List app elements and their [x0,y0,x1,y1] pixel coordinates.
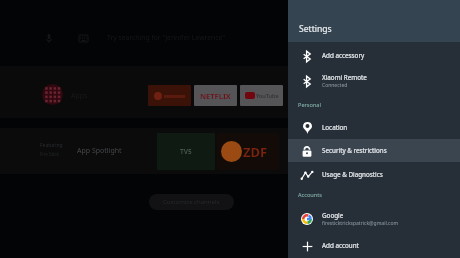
staticText: firesticktrickspatrick@gmail.com [322,220,399,227]
staticText: Personal [298,101,321,109]
staticText: NETFLIX [200,91,231,101]
staticText: Security & restrictions [322,146,387,155]
staticText: Apps [71,91,88,101]
staticText: Usage & Diagnostics [322,170,383,179]
button[interactable]: Add accessory [288,44,460,67]
button[interactable]: Customize channels [149,194,234,210]
staticText: Add accessory [322,51,365,60]
button[interactable]: Usage & Diagnostics [288,163,460,186]
staticText: ZDF [243,143,268,161]
staticText: YouTube [256,92,279,99]
other: Keyboard [79,35,88,42]
staticText: TV5 [180,147,192,156]
staticText: Connected [322,82,348,89]
staticText: Featuring [40,142,63,149]
staticText: Add account [322,241,359,250]
staticText: Try searching for "Jennifer Lawrence" [107,33,226,42]
other: Apps [42,84,63,105]
button[interactable]: YouTube [240,85,283,106]
staticText: Fire Stick [40,151,59,157]
staticText: Location [322,123,348,132]
staticText: Accounts [298,191,322,199]
staticText: App Spotlight [77,146,122,156]
staticText: Google [322,211,344,220]
staticText: Customize channels [163,198,220,206]
button[interactable]: Location [288,116,460,139]
button[interactable]: Google [288,207,460,230]
staticText: Settings [299,23,332,35]
button[interactable]: NETFLIX [194,85,237,106]
button[interactable]: Xiaomi Remote [288,69,460,92]
staticText: Xiaomi Remote [322,73,367,82]
other: Voice search [46,34,52,43]
button[interactable]: Add account [288,234,460,257]
button[interactable]: Security & restrictions [288,139,460,162]
button[interactable]: TV5 [157,133,215,170]
button[interactable]: ZDF [217,133,279,170]
button[interactable] [148,85,191,106]
